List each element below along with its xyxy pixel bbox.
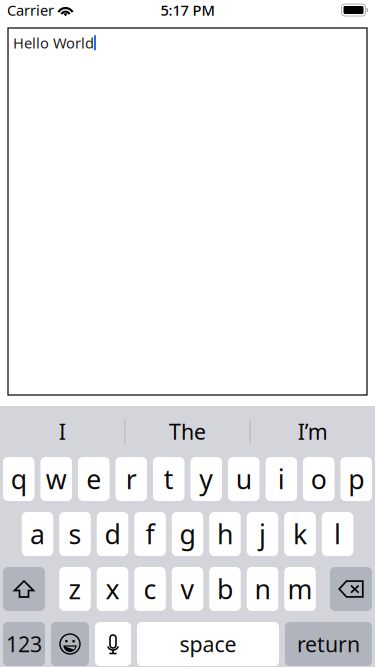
staticText: h bbox=[217, 516, 233, 552]
button[interactable]: Dictation bbox=[95, 622, 131, 666]
staticText: u bbox=[236, 461, 252, 497]
button[interactable]: j bbox=[247, 512, 278, 556]
button[interactable]: I bbox=[0, 406, 124, 457]
staticText: n bbox=[254, 571, 270, 607]
button[interactable]: Shift bbox=[3, 567, 45, 611]
staticText: t bbox=[164, 461, 174, 497]
staticText: w bbox=[46, 461, 67, 497]
button[interactable]: w bbox=[40, 457, 72, 501]
staticText: 123 bbox=[6, 630, 42, 658]
button[interactable]: b bbox=[209, 567, 241, 611]
button[interactable]: f bbox=[134, 512, 166, 556]
button[interactable]: g bbox=[172, 512, 203, 556]
button[interactable]: Delete bbox=[330, 567, 372, 611]
staticText: i bbox=[278, 461, 285, 497]
button[interactable]: z bbox=[59, 567, 91, 611]
staticText: v bbox=[180, 571, 194, 607]
staticText: j bbox=[259, 516, 266, 552]
staticText: q bbox=[11, 461, 27, 497]
button[interactable]: u bbox=[228, 457, 259, 501]
button[interactable]: a bbox=[22, 512, 53, 556]
button[interactable]: r bbox=[115, 457, 147, 501]
staticText: k bbox=[293, 516, 307, 552]
staticText: Hello World bbox=[13, 33, 94, 52]
staticText: e bbox=[86, 461, 101, 497]
staticText: y bbox=[199, 461, 213, 497]
button[interactable]: h bbox=[209, 512, 241, 556]
button[interactable]: v bbox=[172, 567, 203, 611]
button[interactable]: y bbox=[190, 457, 222, 501]
button[interactable]: 123 bbox=[3, 622, 45, 666]
button[interactable]: e bbox=[78, 457, 109, 501]
button[interactable]: p bbox=[340, 457, 372, 501]
button[interactable]: o bbox=[303, 457, 334, 501]
staticText: r bbox=[126, 461, 137, 497]
staticText: Carrier bbox=[7, 0, 54, 20]
button[interactable]: s bbox=[59, 512, 91, 556]
staticText: f bbox=[145, 516, 154, 552]
staticText: b bbox=[217, 571, 233, 607]
button[interactable]: n bbox=[247, 567, 278, 611]
button[interactable]: The bbox=[125, 406, 250, 457]
staticText: d bbox=[104, 516, 120, 552]
staticText: o bbox=[311, 461, 327, 497]
button[interactable]: q bbox=[3, 457, 34, 501]
button[interactable]: t bbox=[153, 457, 184, 501]
button[interactable]: c bbox=[134, 567, 166, 611]
staticText: m bbox=[287, 571, 312, 607]
staticText: z bbox=[68, 571, 81, 607]
staticText: x bbox=[105, 571, 119, 607]
button[interactable]: return bbox=[285, 622, 372, 666]
button[interactable]: I’m bbox=[251, 406, 375, 457]
staticText: a bbox=[30, 516, 45, 552]
button[interactable]: k bbox=[284, 512, 316, 556]
staticText: return bbox=[297, 630, 360, 658]
staticText: space bbox=[179, 630, 236, 658]
staticText: The bbox=[169, 417, 206, 446]
button[interactable]: d bbox=[97, 512, 128, 556]
button[interactable]: x bbox=[97, 567, 128, 611]
staticText: I bbox=[59, 417, 66, 446]
button[interactable]: Emoji bbox=[51, 622, 89, 666]
staticText: p bbox=[348, 461, 364, 497]
staticText: g bbox=[179, 516, 195, 552]
button[interactable]: space bbox=[137, 622, 279, 666]
button[interactable]: l bbox=[322, 512, 353, 556]
staticText: l bbox=[334, 516, 341, 552]
staticText: s bbox=[68, 516, 81, 552]
staticText: 5:17 PM bbox=[160, 0, 214, 20]
button[interactable]: i bbox=[265, 457, 297, 501]
staticText: I’m bbox=[298, 417, 328, 446]
staticText: c bbox=[143, 571, 156, 607]
button[interactable]: m bbox=[284, 567, 316, 611]
